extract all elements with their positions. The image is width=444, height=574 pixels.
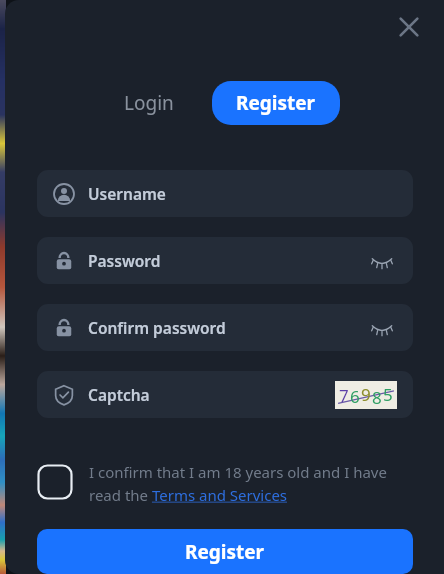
staticText: Register xyxy=(185,539,265,565)
staticText: Login xyxy=(124,90,174,116)
button[interactable] xyxy=(37,464,73,500)
button[interactable]: Confirm password xyxy=(37,304,413,351)
button[interactable]: Password xyxy=(37,237,413,284)
staticText: 6 xyxy=(350,385,360,408)
button[interactable]: Register xyxy=(212,81,340,125)
button[interactable]: Toggle password visibility xyxy=(367,246,397,276)
button[interactable]: Login xyxy=(110,81,188,125)
staticText: I confirm that I am 18 years old and I h… xyxy=(89,462,413,505)
staticText: 9 xyxy=(361,383,371,406)
staticText: Username xyxy=(88,183,166,204)
button[interactable]: I confirm that I am 18 years old and I h… xyxy=(89,462,413,505)
staticText: Register xyxy=(236,90,316,116)
button[interactable]: Toggle password visibility xyxy=(367,313,397,343)
staticText: Password xyxy=(88,250,161,271)
staticText: 5 xyxy=(383,383,393,406)
staticText: Captcha xyxy=(88,384,150,405)
staticText: 7 xyxy=(339,384,349,407)
button[interactable]: Close xyxy=(392,10,426,44)
staticText: 8 xyxy=(372,386,382,409)
button[interactable]: Captcha xyxy=(37,371,413,418)
button[interactable]: Username xyxy=(37,170,413,217)
button[interactable]: Refresh captcha xyxy=(335,381,397,409)
staticText: Confirm password xyxy=(88,317,226,338)
button[interactable]: Register xyxy=(37,529,413,574)
